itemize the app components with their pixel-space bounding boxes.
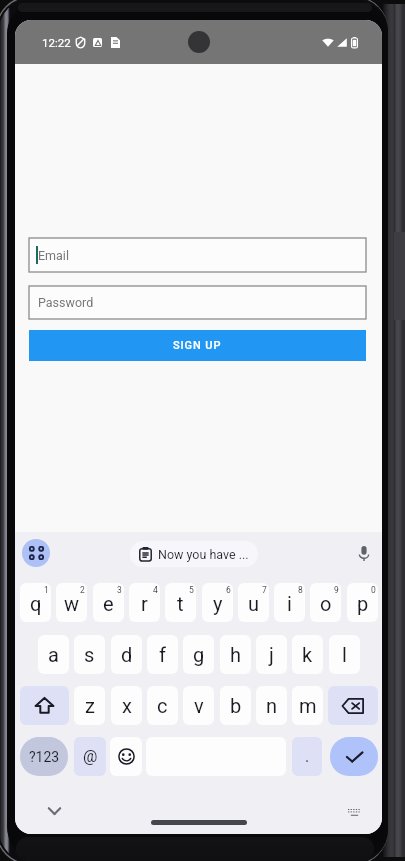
staticText: k [302, 643, 313, 666]
button[interactable]: w [56, 583, 87, 622]
staticText: 9 [334, 585, 339, 595]
button[interactable]: c [147, 686, 178, 725]
staticText: 7 [262, 585, 267, 595]
button[interactable]: e [93, 583, 124, 622]
button[interactable]: v [183, 686, 214, 725]
staticText: o [320, 592, 332, 615]
button[interactable]: k [292, 635, 323, 674]
button[interactable]: r [129, 583, 160, 622]
staticText: y [213, 592, 223, 615]
button[interactable]: z [74, 686, 105, 725]
staticText: 5 [189, 585, 194, 595]
staticText: Now you have ... [158, 547, 249, 562]
staticText: Password [38, 295, 94, 310]
staticText: f [159, 643, 166, 666]
button[interactable]: Now you have ... [130, 541, 258, 567]
staticText: 6 [226, 585, 231, 595]
staticText: j [269, 643, 274, 666]
staticText: c [157, 694, 168, 717]
button[interactable]: @ [74, 737, 106, 776]
button[interactable]: Shift [20, 686, 69, 725]
staticText: h [230, 643, 242, 666]
staticText: SIGN UP [173, 339, 222, 352]
button[interactable]: y [202, 583, 233, 622]
staticText: v [194, 694, 204, 717]
button[interactable]: q [20, 583, 51, 622]
button[interactable]: m [292, 686, 323, 725]
button[interactable]: Hide keyboard [42, 799, 66, 823]
button[interactable]: Voice input [353, 542, 375, 564]
staticText: . [305, 747, 310, 766]
staticText: 1 [44, 585, 49, 595]
button[interactable]: Password [29, 286, 366, 319]
staticText: t [177, 592, 184, 615]
staticText: ?123 [29, 749, 60, 765]
button[interactable]: Enter [330, 737, 378, 776]
button[interactable]: x [111, 686, 142, 725]
button[interactable]: i [274, 583, 305, 622]
staticText: m [299, 694, 317, 717]
button[interactable]: Show apps [22, 539, 50, 567]
staticText: s [84, 643, 95, 666]
staticText: 0 [371, 585, 376, 595]
button[interactable]: l [329, 635, 360, 674]
button[interactable]: Change keyboard [344, 803, 364, 823]
button[interactable]: a [38, 635, 69, 674]
staticText: b [230, 694, 242, 717]
staticText: n [266, 694, 278, 717]
button[interactable]: SIGN UP [29, 330, 366, 361]
button[interactable]: h [220, 635, 251, 674]
staticText: Email [38, 248, 69, 263]
staticText: l [342, 643, 347, 666]
button[interactable]: t [165, 583, 196, 622]
staticText: u [248, 592, 260, 615]
staticText: x [122, 694, 132, 717]
button[interactable]: f [147, 635, 178, 674]
button[interactable]: p [347, 583, 378, 622]
button[interactable]: j [256, 635, 287, 674]
staticText: e [103, 592, 114, 615]
staticText: 4 [153, 585, 158, 595]
staticText: i [287, 592, 292, 615]
staticText: q [30, 592, 42, 615]
button[interactable]: n [256, 686, 287, 725]
staticText: g [193, 643, 205, 666]
staticText: 8 [298, 585, 303, 595]
button[interactable]: Email [29, 238, 366, 272]
button[interactable]: . [292, 737, 322, 776]
staticText: z [85, 694, 95, 717]
staticText: w [64, 592, 80, 615]
button[interactable]: ?123 [20, 737, 68, 776]
button[interactable]: b [220, 686, 251, 725]
button[interactable]: g [183, 635, 214, 674]
staticText: r [141, 592, 148, 615]
button[interactable]: Backspace [328, 686, 378, 725]
staticText: p [357, 592, 369, 615]
button[interactable]: d [111, 635, 142, 674]
staticText: 12:22 [42, 36, 71, 49]
staticText: @ [83, 747, 98, 766]
staticText: a [48, 643, 59, 666]
button[interactable]: Emoji [110, 737, 142, 776]
staticText: d [121, 643, 133, 666]
button[interactable]: s [74, 635, 105, 674]
button[interactable]: u [238, 583, 269, 622]
staticText: 2 [80, 585, 85, 595]
staticText: 3 [117, 585, 122, 595]
button[interactable]: o [310, 583, 341, 622]
